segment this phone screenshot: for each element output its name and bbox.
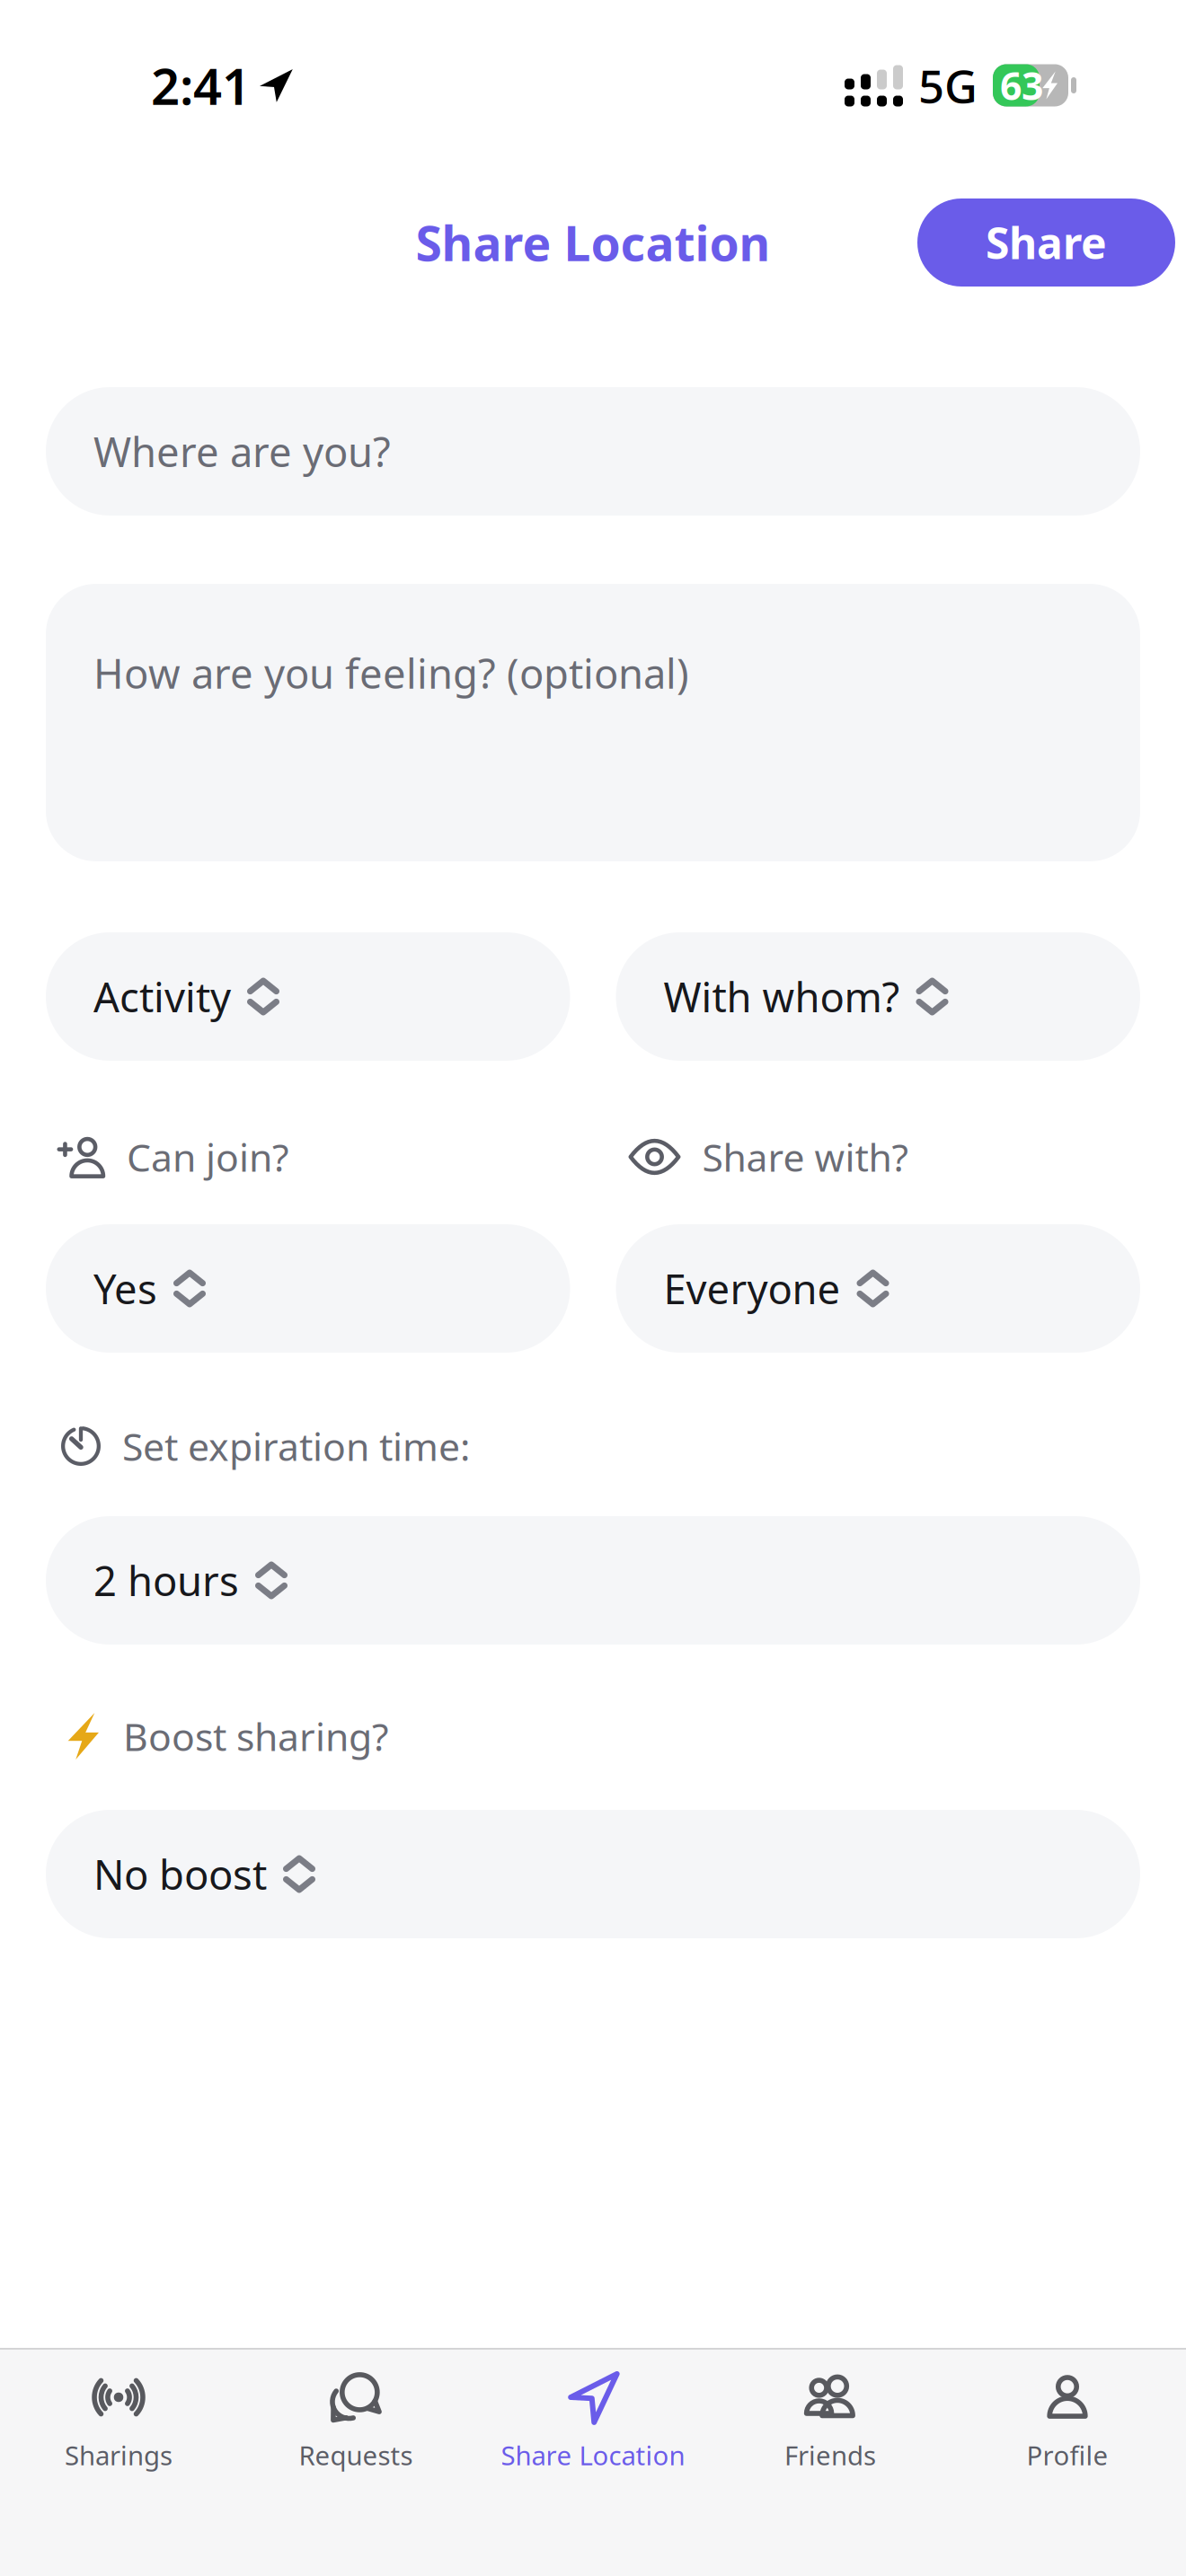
button[interactable]: Yes	[46, 1224, 570, 1353]
button[interactable]: No boost	[46, 1810, 1140, 1938]
staticText: Share Location	[416, 211, 770, 274]
button[interactable]: Where are you?	[46, 387, 1140, 516]
staticText: 2:41	[151, 52, 251, 119]
staticText: Share	[986, 214, 1107, 271]
staticText: Can join?	[127, 1131, 289, 1182]
button[interactable]: Share Location	[474, 2350, 712, 2480]
button[interactable]: With whom?	[616, 932, 1140, 1061]
staticText: 5G	[918, 55, 978, 116]
button[interactable]: How are you feeling? (optional)	[46, 584, 1140, 861]
staticText: Yes	[93, 1261, 157, 1315]
button[interactable]: Sharings	[0, 2350, 237, 2480]
staticText: 63	[1000, 60, 1043, 111]
staticText: Share Location	[501, 2438, 685, 2473]
staticText: Activity	[93, 970, 231, 1024]
staticText: Share with?	[702, 1131, 909, 1182]
button[interactable]: Activity	[46, 932, 570, 1061]
staticText: No boost	[93, 1847, 267, 1901]
button[interactable]: Share	[917, 198, 1175, 287]
staticText: Where are you?	[93, 424, 391, 478]
staticText: Requests	[299, 2438, 413, 2473]
staticText: Set expiration time:	[122, 1421, 470, 1472]
button[interactable]: Everyone	[616, 1224, 1140, 1353]
staticText: How are you feeling? (optional)	[93, 646, 689, 700]
staticText: With whom?	[664, 970, 900, 1024]
button[interactable]: Friends	[712, 2350, 949, 2480]
button[interactable]: Profile	[949, 2350, 1186, 2480]
staticText: 2 hours	[93, 1553, 239, 1607]
staticText: Boost sharing?	[123, 1711, 389, 1762]
staticText: Everyone	[664, 1261, 841, 1315]
button[interactable]: 2 hours	[46, 1516, 1140, 1645]
button[interactable]: Requests	[237, 2350, 474, 2480]
staticText: Profile	[1027, 2438, 1108, 2473]
staticText: Friends	[784, 2438, 876, 2473]
staticText: Sharings	[65, 2438, 173, 2473]
